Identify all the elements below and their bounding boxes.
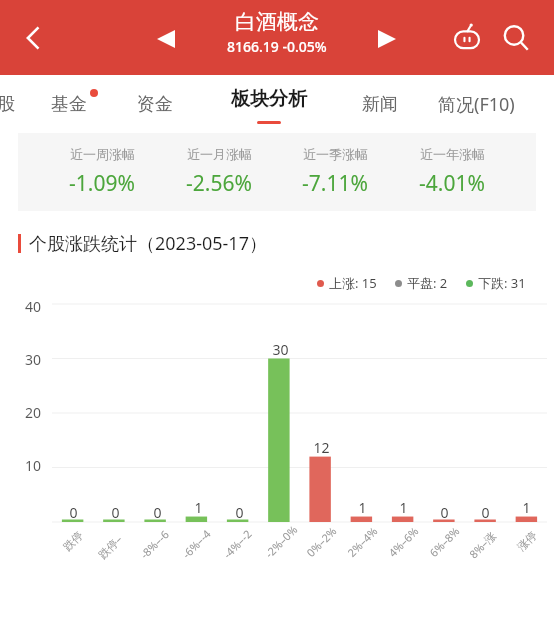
staticText: 8166.19 -0.05% [227, 37, 327, 56]
staticText: 涨停 [514, 528, 540, 554]
staticText: 近一季涨幅 [303, 146, 368, 162]
staticText: 40 [25, 297, 42, 316]
staticText: -2%–0% [262, 522, 300, 561]
button[interactable]: 板块分析 [210, 75, 328, 133]
staticText: 简况(F10) [438, 92, 515, 117]
button[interactable]: 新闻 [345, 75, 415, 133]
button[interactable]: 基金 [34, 75, 104, 133]
button[interactable]: Previous [145, 18, 187, 60]
staticText: 近一年涨幅 [420, 146, 485, 162]
button[interactable]: 股 [0, 75, 26, 133]
staticText: 8%–涨停 [466, 522, 505, 561]
staticText: -8%–-6% [137, 521, 177, 562]
button[interactable]: 近一周涨幅 [18, 133, 536, 211]
button[interactable]: 简况(F10) [438, 75, 554, 133]
button[interactable]: 白酒概念 [227, 9, 327, 56]
staticText: 0 [111, 503, 120, 522]
staticText: 12 [313, 438, 330, 457]
staticText: 6%–8% [426, 523, 463, 560]
staticText: -2.56% [186, 169, 252, 198]
staticText: 白酒概念 [235, 9, 319, 35]
staticText: 下跌: 31 [478, 274, 526, 292]
staticText: 平盘: 2 [407, 274, 448, 292]
staticText: 0 [153, 503, 162, 522]
staticText: 2%–4% [344, 523, 381, 560]
button[interactable]: Search [492, 14, 540, 62]
button[interactable]: Next [366, 18, 408, 60]
staticText: 股 [0, 93, 15, 116]
staticText: 上涨: 15 [329, 274, 377, 292]
staticText: 30 [25, 350, 42, 369]
staticText: 4%–6% [385, 523, 422, 560]
staticText: 资金 [137, 93, 173, 116]
staticText: -4%–-2% [220, 522, 259, 561]
staticText: -1.09% [69, 169, 135, 198]
staticText: 1 [399, 498, 408, 517]
staticText: -6%–-4% [179, 522, 218, 561]
staticText: 跌停–8% [95, 521, 135, 562]
staticText: 0%–2% [303, 523, 340, 560]
staticText: -7.11% [302, 169, 368, 198]
staticText: 1 [522, 498, 531, 517]
staticText: 0 [235, 503, 244, 522]
button[interactable]: Back [8, 12, 60, 64]
staticText: 0 [481, 503, 490, 522]
staticText: 1 [194, 498, 203, 517]
staticText: 个股涨跌统计（2023-05-17） [29, 231, 267, 256]
staticText: 1 [358, 498, 367, 517]
staticText: 基金 [51, 93, 87, 116]
staticText: 30 [272, 340, 289, 359]
staticText: 新闻 [362, 93, 398, 116]
staticText: 近一周涨幅 [70, 146, 135, 162]
button[interactable]: Assistant [443, 14, 491, 62]
staticText: 0 [440, 503, 449, 522]
staticText: 0 [69, 503, 78, 522]
staticText: 板块分析 [231, 87, 307, 111]
staticText: 20 [25, 403, 42, 422]
staticText: 10 [25, 456, 42, 475]
staticText: 近一月涨幅 [187, 146, 252, 162]
staticText: 跌停 [60, 528, 86, 554]
staticText: -4.01% [419, 169, 485, 198]
button[interactable]: 资金 [120, 75, 190, 133]
